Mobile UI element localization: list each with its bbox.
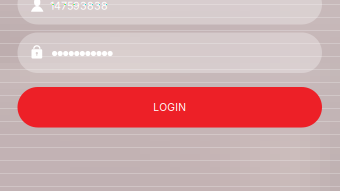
button[interactable]: LOGIN — [17, 87, 322, 127]
staticText: LOGIN — [153, 101, 186, 114]
staticText: 147593838 — [50, 0, 108, 12]
button[interactable] — [17, 32, 322, 73]
button[interactable]: 147593838 — [17, 0, 322, 24]
